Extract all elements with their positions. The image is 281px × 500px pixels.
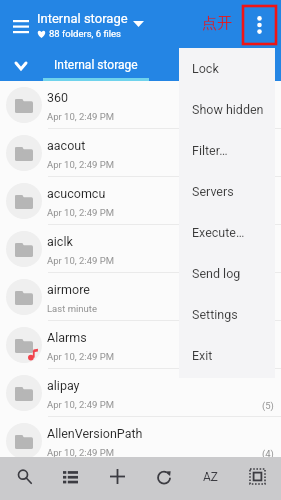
staticText: Apr 10, 2:49 PM <box>47 159 114 170</box>
staticText: Servers <box>192 184 234 199</box>
staticText: Lock <box>192 61 219 76</box>
button[interactable]: Expand path <box>7 50 35 78</box>
button[interactable]: Execute… <box>179 212 275 253</box>
staticText: Send log <box>192 266 241 281</box>
button[interactable]: 360 <box>0 81 281 129</box>
button[interactable]: aiclk <box>0 225 281 273</box>
button[interactable]: Settings <box>179 294 275 335</box>
button[interactable]: Filter… <box>179 130 275 171</box>
staticText: (5) <box>262 400 274 411</box>
button[interactable]: Open navigation drawer <box>5 8 37 40</box>
staticText: Apr 10, 2:49 PM <box>47 255 114 266</box>
staticText: aacout <box>47 138 86 153</box>
button[interactable]: Refresh <box>141 457 187 500</box>
staticText: Alarms <box>47 330 87 345</box>
staticText: airmore <box>47 282 90 297</box>
button[interactable]: Send log <box>179 253 275 294</box>
staticText: Internal storage <box>54 58 138 72</box>
button[interactable]: More options <box>243 6 276 44</box>
staticText: alipay <box>47 378 80 393</box>
staticText: Execute… <box>192 225 245 240</box>
staticText: AZ <box>203 470 219 484</box>
button[interactable]: Search <box>1 457 47 500</box>
staticText: 点开 <box>202 14 232 33</box>
button[interactable]: acucomcu <box>0 177 281 225</box>
staticText: Apr 10, 2:49 PM <box>47 111 114 122</box>
staticText: Exit <box>192 348 213 363</box>
staticText: 360 <box>47 90 69 105</box>
button[interactable]: Lock <box>179 48 275 89</box>
button[interactable]: Exit <box>179 335 275 376</box>
staticText: AllenVersionPath <box>47 426 143 441</box>
button[interactable]: Show hidden <box>179 89 275 130</box>
button[interactable]: Internal storage <box>43 48 149 81</box>
staticText: 88 folders, 6 files <box>49 28 122 39</box>
button[interactable]: aacout <box>0 129 281 177</box>
staticText: Apr 10, 2:49 PM <box>47 447 114 458</box>
button[interactable]: List view <box>47 457 93 500</box>
staticText: Internal storage <box>37 11 128 26</box>
staticText: aiclk <box>47 234 73 249</box>
staticText: Apr 10, 2:49 PM <box>47 399 114 410</box>
staticText: Show hidden <box>192 102 264 117</box>
button[interactable]: airmore <box>0 273 281 321</box>
staticText: Settings <box>192 307 238 322</box>
button[interactable]: 点开 <box>202 14 232 33</box>
button[interactable]: alipay <box>0 369 281 417</box>
button[interactable]: AllenVersionPath <box>0 417 281 465</box>
button[interactable]: Servers <box>179 171 275 212</box>
staticText: Filter… <box>192 143 228 158</box>
staticText: Apr 10, 2:49 PM <box>47 351 114 362</box>
staticText: Apr 10, 2:49 PM <box>47 207 114 218</box>
button[interactable]: Sort alphabetically <box>188 457 234 500</box>
button[interactable]: Add <box>94 457 140 500</box>
button[interactable]: Select items <box>234 457 280 500</box>
staticText: acucomcu <box>47 186 106 201</box>
staticText: Last minute <box>47 303 97 314</box>
staticText: (4) <box>262 448 274 459</box>
button[interactable]: Alarms <box>0 321 281 369</box>
